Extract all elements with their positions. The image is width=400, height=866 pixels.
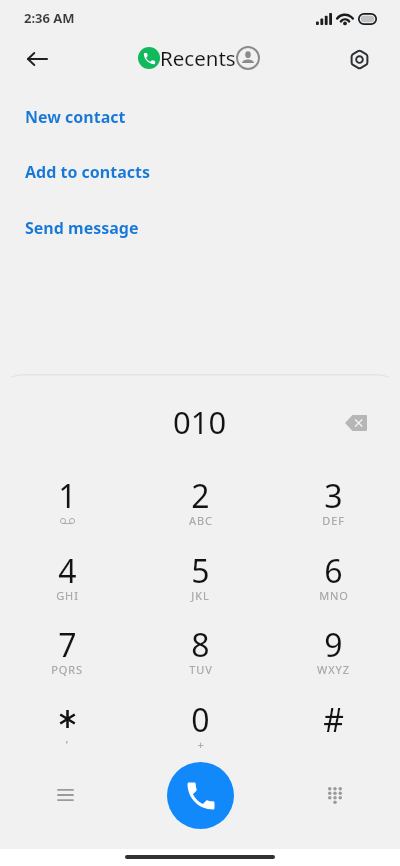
staticText: 9 bbox=[324, 623, 343, 667]
staticText: 5 bbox=[191, 549, 210, 593]
staticText: + bbox=[197, 737, 205, 752]
staticText: Recents bbox=[160, 44, 236, 72]
button[interactable]: Settings bbox=[339, 39, 379, 79]
button[interactable]: 7 bbox=[0, 625, 134, 700]
staticText: 0 bbox=[191, 698, 210, 742]
button[interactable]: 1 bbox=[0, 476, 134, 551]
button[interactable]: # bbox=[267, 700, 400, 775]
staticText: 3 bbox=[324, 474, 343, 518]
button[interactable]: Backspace bbox=[334, 401, 378, 445]
staticText: Send message bbox=[25, 217, 139, 239]
button[interactable]: 0 bbox=[134, 700, 267, 775]
button[interactable]: 6 bbox=[267, 551, 400, 626]
staticText: Add to contacts bbox=[25, 161, 150, 183]
button[interactable]: 8 bbox=[134, 625, 267, 700]
button[interactable]: Back bbox=[17, 39, 57, 79]
staticText: ABC bbox=[189, 513, 213, 528]
button[interactable]: Add to contacts bbox=[0, 150, 400, 194]
button[interactable]: Call bbox=[167, 762, 234, 829]
staticText: 2:36 AM bbox=[24, 9, 75, 27]
staticText: 7 bbox=[58, 623, 77, 667]
staticText: 1 bbox=[58, 474, 77, 518]
button[interactable]: Send message bbox=[0, 206, 400, 250]
staticText: ’ bbox=[66, 737, 69, 752]
staticText: DEF bbox=[322, 513, 345, 528]
button[interactable]: 9 bbox=[267, 625, 400, 700]
staticText: 8 bbox=[191, 623, 210, 667]
staticText: PQRS bbox=[51, 662, 83, 677]
staticText: MNO bbox=[319, 588, 349, 603]
staticText: # bbox=[323, 698, 344, 742]
staticText: JKL bbox=[191, 588, 210, 603]
staticText: 4 bbox=[58, 549, 77, 593]
staticText: New contact bbox=[25, 106, 126, 128]
staticText: 2 bbox=[191, 474, 210, 518]
button[interactable]: 5 bbox=[134, 551, 267, 626]
staticText: 6 bbox=[324, 549, 343, 593]
button[interactable]: 3 bbox=[267, 476, 400, 551]
button[interactable]: New contact bbox=[0, 95, 400, 139]
button[interactable]: 2 bbox=[134, 476, 267, 551]
staticText: TUV bbox=[189, 662, 213, 677]
button[interactable]: 4 bbox=[0, 551, 134, 626]
staticText: WXYZ bbox=[317, 662, 350, 677]
button[interactable]: Call log bbox=[43, 773, 87, 817]
button[interactable]: Dialpad bbox=[313, 773, 357, 817]
button[interactable]: ’ bbox=[0, 700, 134, 775]
staticText: GHI bbox=[56, 588, 79, 603]
staticText: 010 bbox=[173, 401, 227, 443]
